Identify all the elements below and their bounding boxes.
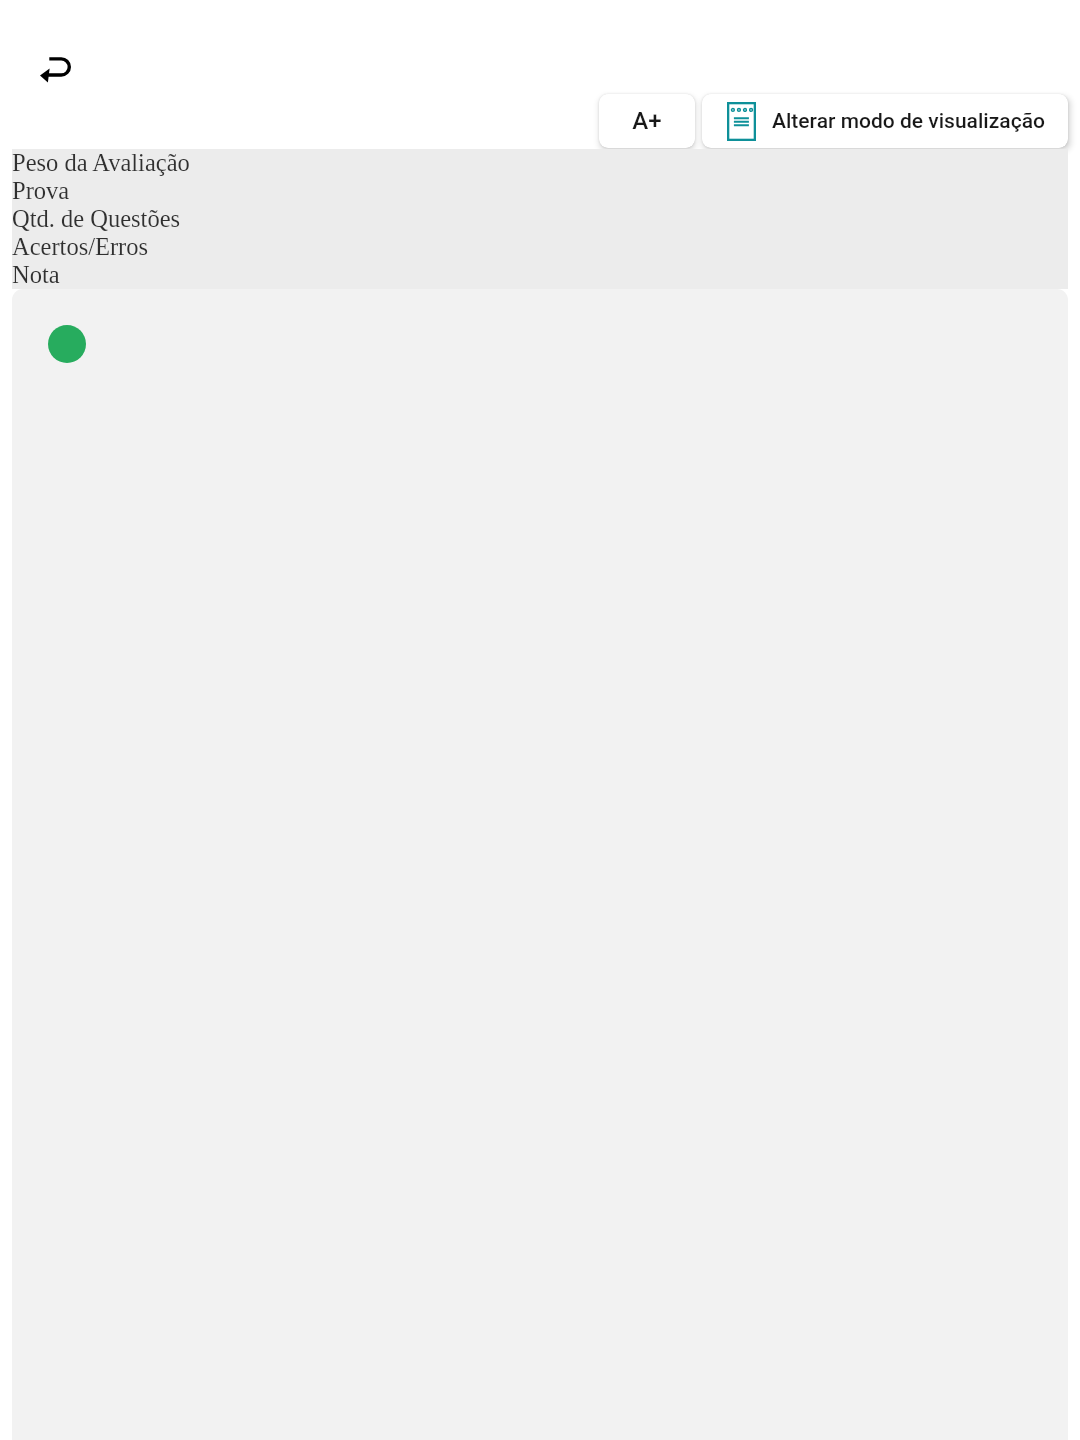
staticText: Nota xyxy=(12,261,60,288)
staticText: Alterar modo de visualização xyxy=(772,109,1045,134)
staticText: A+ xyxy=(632,107,662,135)
button[interactable]: A+ xyxy=(599,94,695,148)
staticText: Acertos/Erros xyxy=(12,233,149,260)
staticText: Peso da Avaliação xyxy=(12,149,190,176)
button[interactable]: Voltar xyxy=(24,40,86,102)
staticText: Qtd. de Questões xyxy=(12,205,181,232)
button[interactable]: Alterar modo de visualização xyxy=(702,94,1068,148)
staticText: Prova xyxy=(12,177,70,204)
